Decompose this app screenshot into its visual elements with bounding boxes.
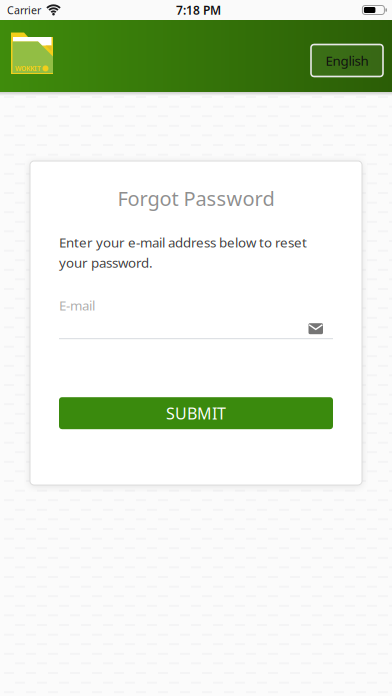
- button[interactable]: SUBMIT: [59, 397, 333, 429]
- staticText: E-mail: [59, 296, 95, 314]
- staticText: SUBMIT: [166, 403, 226, 424]
- staticText: English: [325, 52, 368, 69]
- staticText: Forgot Password: [117, 185, 274, 212]
- button[interactable]: English: [311, 44, 383, 76]
- staticText: 7:18 PM: [176, 2, 221, 18]
- staticText: Carrier: [7, 3, 41, 17]
- staticText: WOKKIT: [15, 64, 41, 73]
- staticText: Enter your e-mail address below to reset…: [59, 234, 307, 271]
